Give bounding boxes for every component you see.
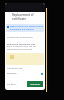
button[interactable]: Continue (27, 81, 43, 87)
staticText: Select the certificate you (7, 42, 36, 45)
staticText: Standard (7, 72, 17, 75)
staticText: want to replace from the list (7, 45, 36, 48)
staticText: Please check your details before (10, 25, 43, 28)
button[interactable]: Standard (7, 72, 43, 75)
staticText: Replacement of certificate (12, 13, 44, 21)
staticText: submitting the request. (10, 28, 35, 31)
staticText: Certificate type (7, 67, 23, 70)
button[interactable] (6, 53, 44, 65)
staticText: below before continuing. (7, 48, 33, 51)
button[interactable]: Please check your details before (6, 24, 44, 32)
staticText: Continue (30, 83, 40, 86)
button[interactable]: Go back (7, 83, 16, 86)
staticText: Certificate identification (7, 36, 33, 39)
